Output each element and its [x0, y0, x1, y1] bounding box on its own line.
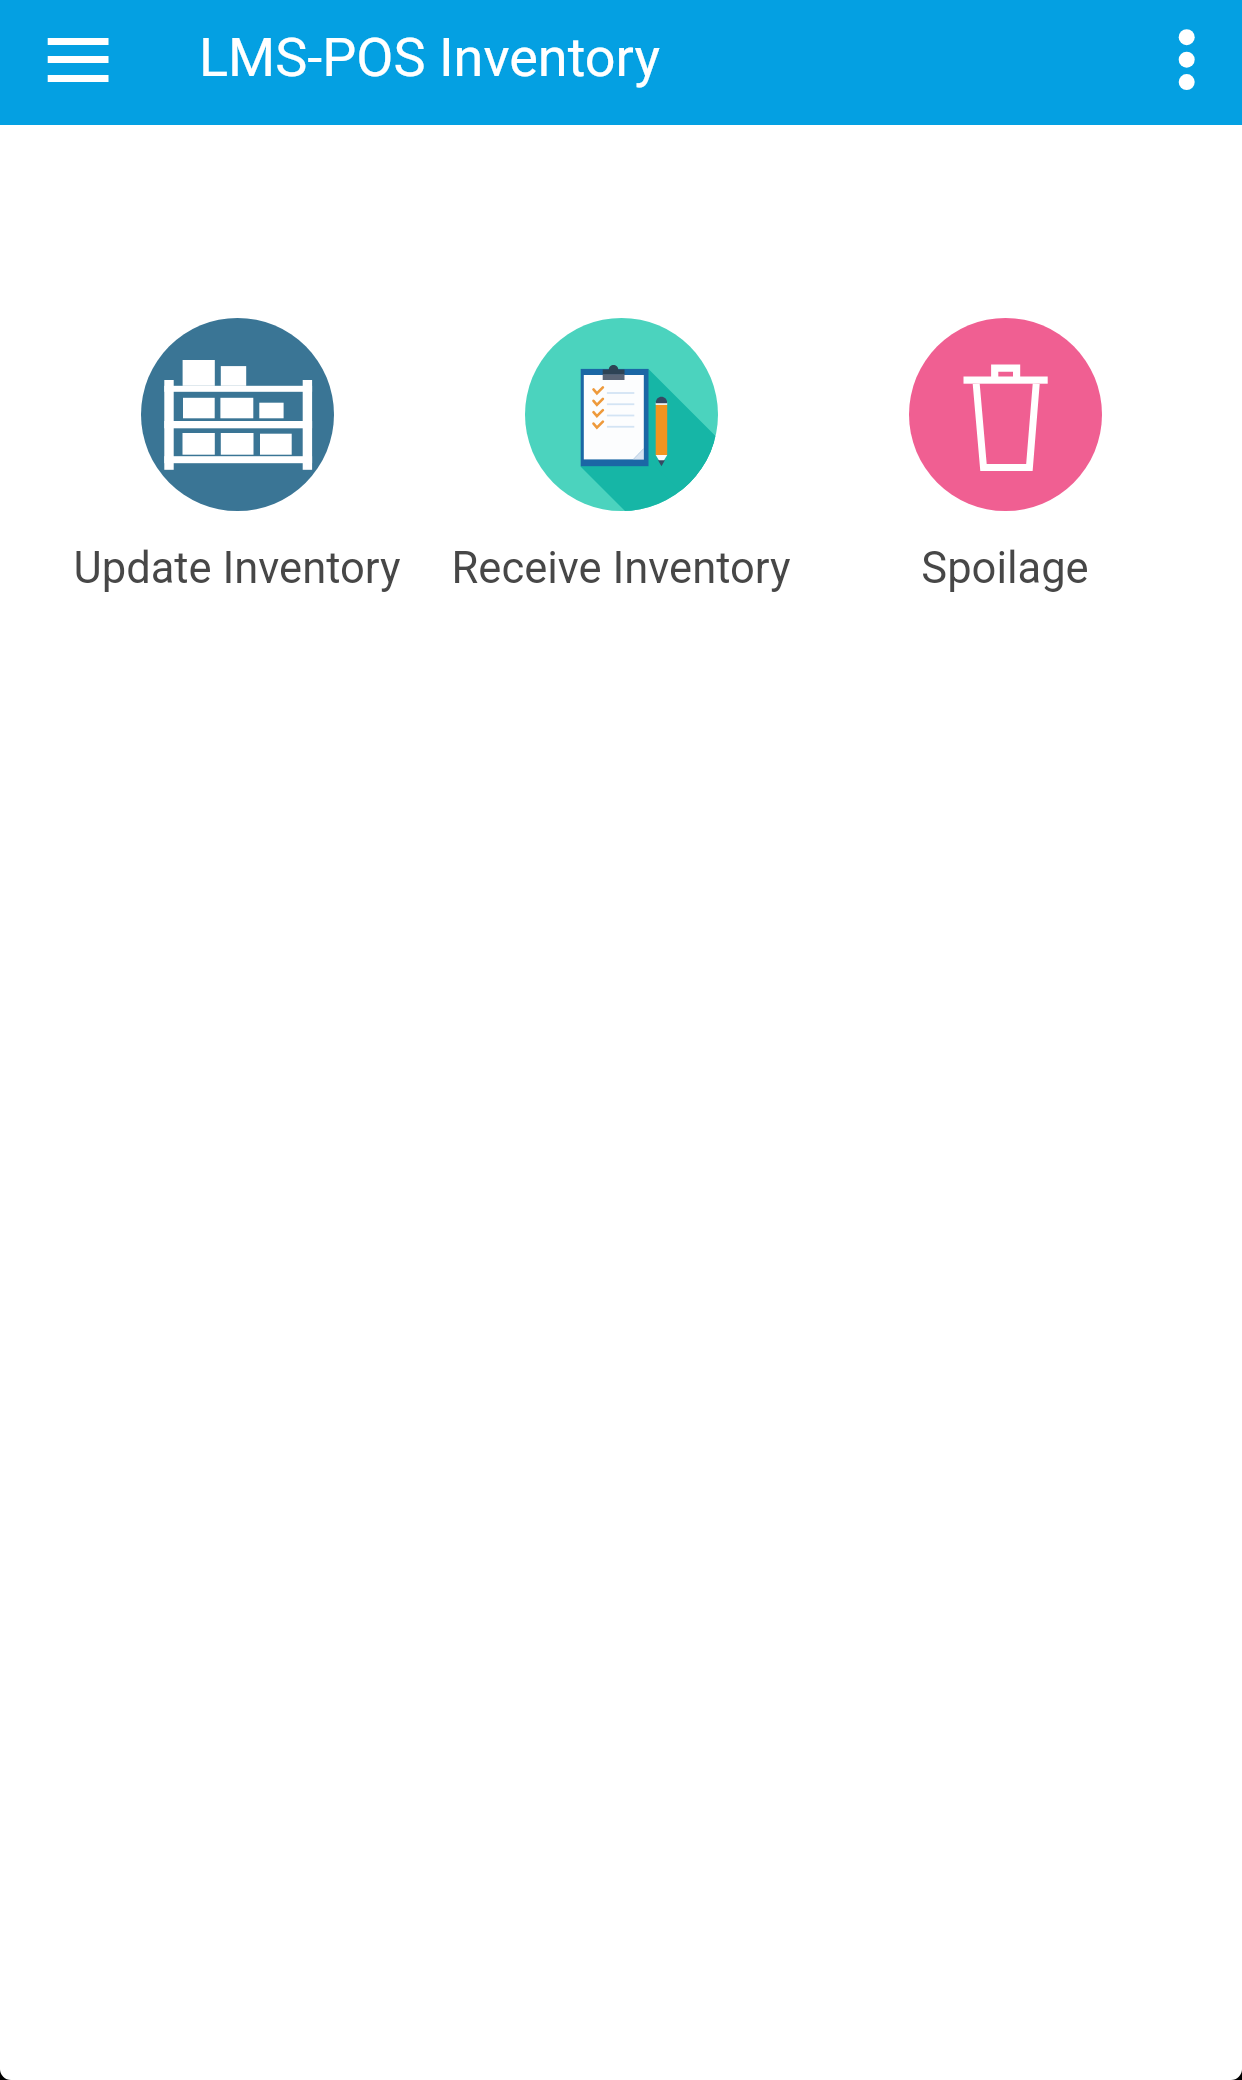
staticText: Update Inventory	[45, 543, 429, 594]
button[interactable]: Update Inventory	[45, 318, 429, 594]
button[interactable]: Open navigation drawer	[30, 20, 130, 106]
staticText: Spoilage	[813, 543, 1197, 594]
staticText: Receive Inventory	[429, 543, 813, 594]
staticText: LMS-POS Inventory	[199, 26, 660, 89]
button[interactable]: More options	[1152, 14, 1222, 110]
button[interactable]: Receive Inventory	[429, 318, 813, 594]
button[interactable]: Spoilage	[813, 318, 1197, 594]
